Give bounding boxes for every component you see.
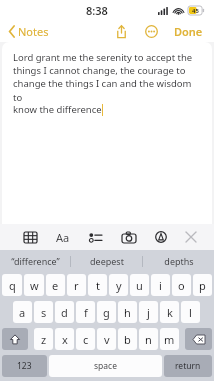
staticText: g (103, 305, 110, 320)
button[interactable]: s (34, 301, 53, 323)
staticText: Done (174, 24, 203, 39)
button[interactable]: u (130, 274, 149, 296)
button[interactable]: z (34, 328, 53, 350)
staticText: r (74, 278, 79, 293)
button[interactable]: k (160, 301, 179, 323)
staticText: i (159, 278, 162, 293)
button[interactable]: Checklist (87, 230, 104, 245)
staticText: c (83, 332, 89, 347)
button[interactable]: y (109, 274, 128, 296)
button[interactable]: Aa (54, 228, 72, 247)
staticText: “difference” (11, 255, 60, 267)
button[interactable]: t (88, 274, 107, 296)
button[interactable]: “difference” (0, 250, 70, 272)
button[interactable]: w (24, 274, 44, 296)
button[interactable]: a (13, 301, 32, 323)
button[interactable]: Close toolbar (184, 230, 198, 244)
staticText: j (147, 305, 150, 320)
button[interactable]: m (160, 328, 179, 350)
button[interactable]: r (67, 274, 86, 296)
staticText: o (178, 278, 185, 293)
staticText: know the difference (13, 103, 102, 116)
button[interactable]: q (2, 274, 22, 296)
staticText: deepest (90, 255, 124, 267)
button[interactable]: v (97, 328, 116, 350)
button[interactable]: j (139, 301, 158, 323)
staticText: 45 (192, 7, 199, 15)
button[interactable]: b (118, 328, 137, 350)
staticText: return (175, 360, 201, 372)
button[interactable]: depths (143, 250, 214, 272)
button[interactable]: n (139, 328, 158, 350)
staticText: b (124, 332, 131, 347)
button[interactable]: x (55, 328, 74, 350)
button[interactable]: p (193, 274, 212, 296)
staticText: w (30, 278, 39, 293)
staticText: p (199, 278, 206, 293)
staticText: l (189, 305, 192, 320)
staticText: things I cannot change, the courage to (13, 64, 186, 77)
staticText: change the things I can and the wisdom t… (13, 77, 202, 103)
staticText: d (61, 305, 68, 320)
staticText: z (41, 332, 47, 347)
staticText: k (167, 305, 173, 320)
staticText: m (164, 332, 175, 347)
button[interactable]: f (76, 301, 95, 323)
staticText: Lord grant me the serenity to accept the (13, 51, 193, 64)
button[interactable]: Markup (153, 229, 169, 245)
staticText: Notes (18, 24, 49, 39)
staticText: s (41, 305, 47, 320)
button[interactable]: g (97, 301, 116, 323)
button[interactable]: return (164, 355, 212, 377)
button[interactable]: space (49, 355, 162, 377)
button[interactable]: l (181, 301, 200, 323)
button[interactable]: Done (172, 22, 205, 41)
button[interactable]: Shift (2, 328, 28, 350)
staticText: n (145, 332, 152, 347)
staticText: h (124, 305, 131, 320)
button[interactable]: Backspace (185, 328, 212, 350)
button[interactable]: Lord grant me the serenity to accept the (2, 42, 212, 224)
button[interactable]: deepest (71, 250, 142, 272)
button[interactable]: e (46, 274, 65, 296)
button[interactable]: Share (113, 22, 130, 41)
staticText: x (62, 332, 68, 347)
button[interactable]: i (151, 274, 170, 296)
staticText: v (104, 332, 110, 347)
button[interactable]: h (118, 301, 137, 323)
button[interactable]: More options (142, 22, 161, 41)
staticText: f (84, 305, 88, 320)
staticText: q (9, 278, 16, 293)
staticText: 123 (17, 360, 32, 372)
button[interactable]: Camera (120, 230, 138, 245)
staticText: depths (164, 255, 194, 267)
button[interactable]: c (76, 328, 95, 350)
staticText: y (116, 278, 122, 293)
staticText: space (94, 360, 117, 372)
button[interactable]: Notes (7, 22, 51, 41)
staticText: a (19, 305, 26, 320)
staticText: u (136, 278, 143, 293)
staticText: 8:38 (86, 3, 108, 18)
staticText: e (52, 278, 59, 293)
button[interactable]: d (55, 301, 74, 323)
staticText: Aa (56, 230, 70, 245)
button[interactable]: Table (22, 230, 39, 245)
staticText: t (96, 278, 100, 293)
button[interactable]: o (172, 274, 191, 296)
button[interactable]: 123 (2, 355, 47, 377)
